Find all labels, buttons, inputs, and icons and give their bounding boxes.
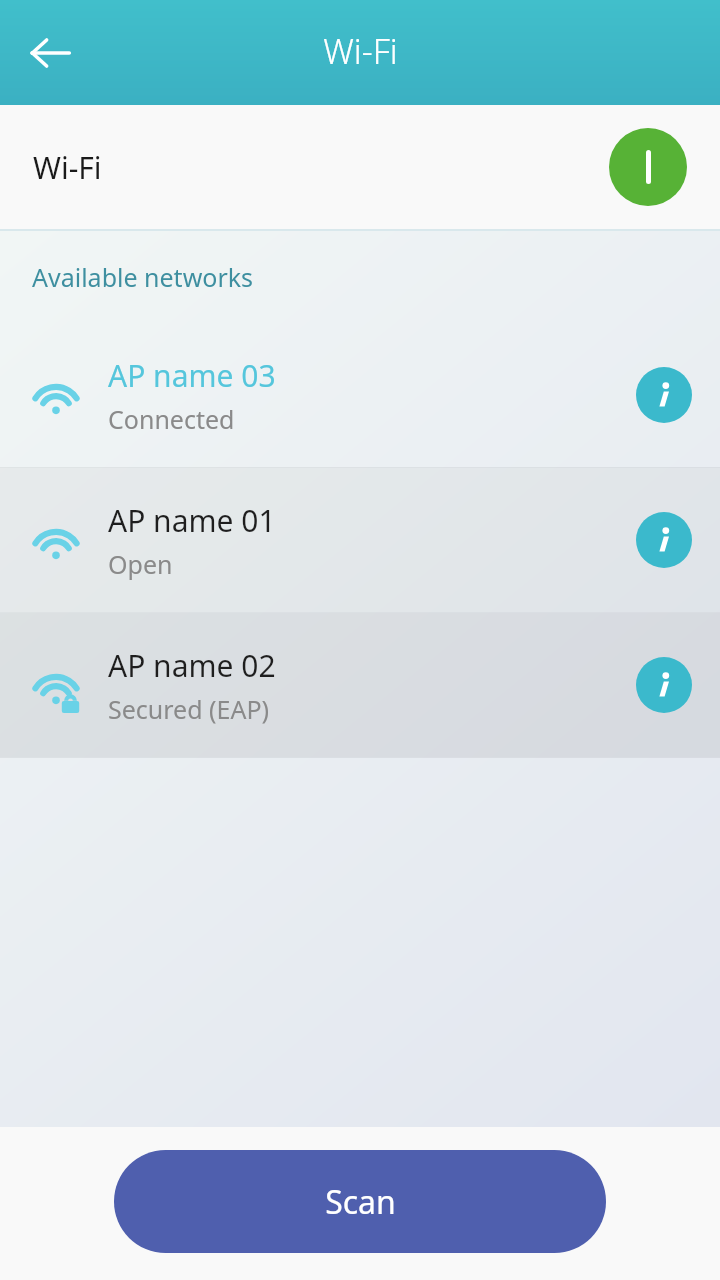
button[interactable]: AP name 02 [0, 613, 720, 757]
staticText: Available networks [32, 260, 254, 294]
button[interactable]: Network info for AP name 03 [636, 367, 692, 423]
button[interactable]: AP name 01 [0, 468, 720, 612]
button[interactable]: Wi-Fi [0, 105, 720, 229]
staticText: Open [108, 547, 173, 581]
staticText: AP name 02 [108, 645, 276, 686]
staticText: AP name 03 [108, 355, 276, 396]
button[interactable]: Back [14, 17, 86, 89]
staticText: Connected [108, 402, 235, 436]
staticText: Wi-Fi [323, 28, 398, 74]
staticText: Scan [325, 1180, 396, 1224]
staticText: Secured (EAP) [108, 692, 270, 726]
button[interactable]: Network info for AP name 02 [636, 657, 692, 713]
button[interactable]: AP name 03 [0, 323, 720, 467]
button[interactable]: Scan [114, 1150, 606, 1253]
staticText: Wi-Fi [33, 147, 609, 188]
button[interactable]: Network info for AP name 01 [636, 512, 692, 568]
button[interactable]: Wi-Fi on [609, 128, 687, 206]
staticText: AP name 01 [108, 500, 276, 541]
